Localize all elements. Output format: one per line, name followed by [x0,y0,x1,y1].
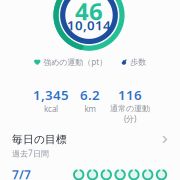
staticText: 116 [118,86,142,104]
staticText: 毎日の目標 [12,133,67,146]
staticText: 歩数 [130,57,146,67]
staticText: 46 [75,0,103,27]
staticText: 通常の運動 [110,104,150,113]
staticText: 強めの運動（pt） [43,57,107,67]
button[interactable]: 毎日の目標 [0,133,180,179]
staticText: 6.2 [80,86,100,104]
staticText: 過去7日間 [12,148,49,159]
staticText: km [84,104,95,114]
staticText: 1,345 [33,86,69,104]
staticText: 7/7 [12,167,31,180]
staticText: 10,014 [67,16,111,34]
staticText: kcal [44,104,58,114]
staticText: (分) [124,113,136,124]
